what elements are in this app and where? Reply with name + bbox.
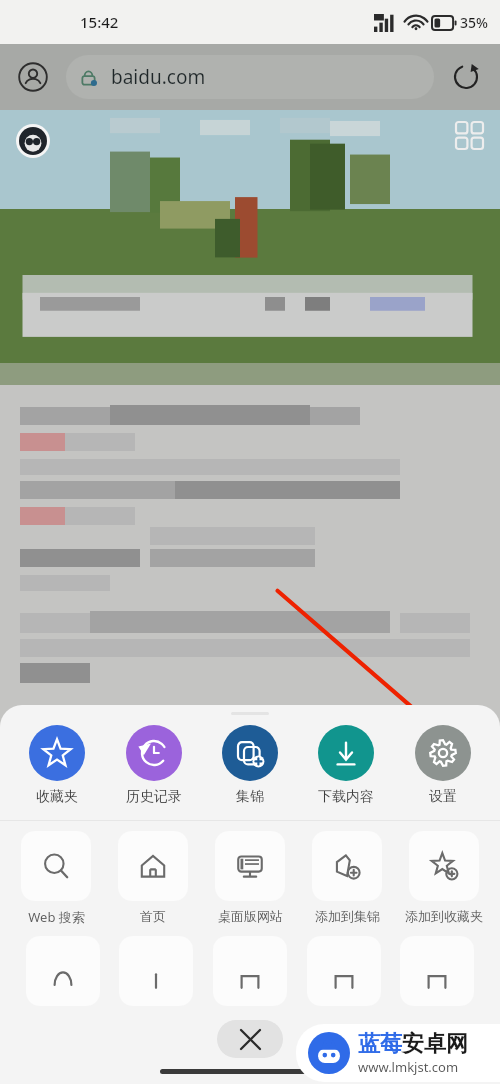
staticText: 15:42 bbox=[80, 12, 119, 32]
button[interactable]: Web 搜索 bbox=[9, 831, 103, 926]
staticText: 集锦 bbox=[236, 788, 264, 806]
staticText: 首页 bbox=[140, 908, 166, 924]
button[interactable] bbox=[26, 936, 100, 1006]
button[interactable] bbox=[119, 936, 193, 1006]
button[interactable]: 历史记录 bbox=[109, 723, 199, 808]
button[interactable] bbox=[307, 936, 381, 1006]
staticText: 设置 bbox=[429, 788, 457, 806]
button[interactable]: 添加到集锦 bbox=[300, 831, 394, 924]
button[interactable]: 集锦 bbox=[205, 723, 295, 808]
staticText: 蓝莓 bbox=[358, 1030, 402, 1058]
staticText: baidu.com bbox=[111, 64, 206, 90]
staticText: 35% bbox=[460, 13, 488, 32]
staticText: Web 搜索 bbox=[28, 908, 85, 926]
staticText: 安卓网 bbox=[402, 1030, 468, 1058]
staticText: 桌面版网站 bbox=[218, 908, 283, 924]
staticText: 历史记录 bbox=[126, 788, 182, 806]
button[interactable]: 首页 bbox=[106, 831, 200, 924]
staticText: 下载内容 bbox=[318, 788, 374, 806]
staticText: www.lmkjst.com bbox=[358, 1058, 459, 1076]
button[interactable]: Profile bbox=[10, 54, 56, 100]
button[interactable] bbox=[400, 936, 474, 1006]
button[interactable]: 设置 bbox=[398, 723, 488, 808]
button[interactable]: baidu.com bbox=[66, 55, 434, 99]
staticText: 收藏夹 bbox=[36, 788, 78, 806]
button[interactable]: 添加到收藏夹 bbox=[397, 831, 491, 924]
button[interactable] bbox=[213, 936, 287, 1006]
button[interactable]: 桌面版网站 bbox=[203, 831, 297, 924]
button[interactable]: 下载内容 bbox=[301, 723, 391, 808]
staticText: 添加到收藏夹 bbox=[405, 908, 483, 924]
button[interactable]: 重设菜单 bbox=[430, 1030, 486, 1048]
button[interactable]: Apps bbox=[456, 122, 486, 152]
button[interactable]: Reload bbox=[444, 55, 488, 99]
staticText: 添加到集锦 bbox=[315, 908, 380, 924]
button[interactable]: 收藏夹 bbox=[12, 723, 102, 808]
button[interactable]: Close bbox=[217, 1020, 283, 1058]
